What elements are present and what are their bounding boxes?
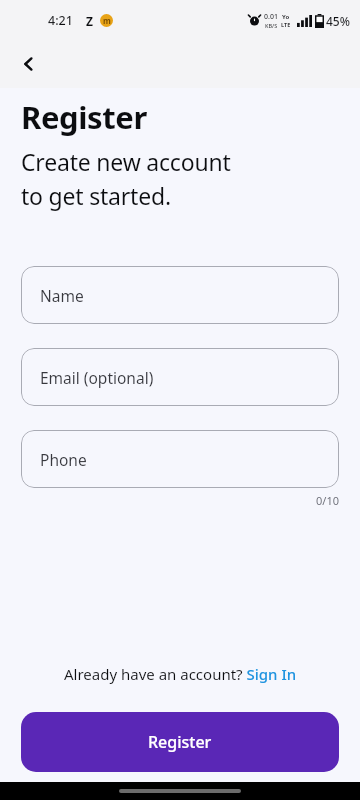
staticText: Register bbox=[148, 731, 212, 753]
staticText: Yo bbox=[282, 13, 290, 21]
staticText: Phone bbox=[40, 449, 87, 470]
staticText: 0.01 bbox=[264, 12, 278, 22]
button[interactable]: Name bbox=[21, 266, 339, 324]
staticText: 4:21 bbox=[48, 12, 73, 29]
button[interactable]: Already have an account? Sign In bbox=[0, 664, 360, 684]
staticText: Create new account to get started. bbox=[21, 146, 231, 211]
button[interactable]: Phone bbox=[21, 430, 339, 488]
staticText: 0/10 bbox=[316, 493, 339, 508]
staticText: Name bbox=[40, 285, 84, 306]
staticText: Already have an account? Sign In bbox=[64, 664, 297, 684]
button[interactable]: Register bbox=[21, 712, 339, 772]
staticText: Email (optional) bbox=[40, 367, 154, 388]
button[interactable]: Email (optional) bbox=[21, 348, 339, 406]
staticText: Z bbox=[86, 13, 93, 29]
staticText: 45% bbox=[326, 13, 350, 29]
staticText: LTE bbox=[281, 21, 291, 28]
staticText: KB/S bbox=[265, 22, 278, 29]
staticText: m bbox=[103, 15, 111, 26]
button[interactable]: Back bbox=[10, 45, 48, 83]
staticText: Register bbox=[21, 96, 147, 138]
